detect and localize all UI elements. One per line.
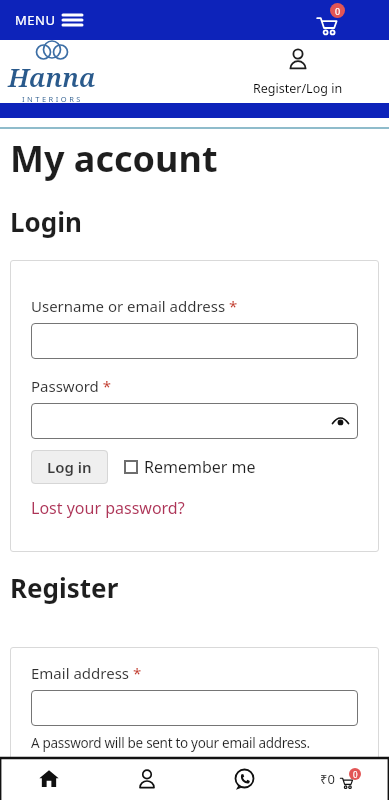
staticText: 0 <box>335 5 341 17</box>
button[interactable]: Hanna <box>0 40 96 103</box>
button[interactable] <box>98 757 195 800</box>
staticText: 0 <box>353 769 358 780</box>
staticText: ₹0 <box>320 770 335 788</box>
staticText: Log in <box>47 457 92 477</box>
button[interactable]: Remember me <box>124 456 256 478</box>
staticText: Username or email address * <box>31 296 238 316</box>
staticText: Register/Log in <box>253 80 343 97</box>
button[interactable]: 0 <box>315 3 389 37</box>
button[interactable]: Register/Log in <box>253 46 349 97</box>
staticText: Remember me <box>144 456 256 478</box>
staticText: Email address * <box>31 663 142 683</box>
staticText: My account <box>10 134 218 183</box>
staticText: MENU <box>15 11 56 29</box>
button[interactable] <box>31 403 358 439</box>
button[interactable] <box>31 690 358 726</box>
button[interactable]: Log in <box>31 450 108 484</box>
button[interactable]: Lost your password? <box>31 497 185 519</box>
staticText: Login <box>10 204 82 239</box>
button[interactable]: ₹0 <box>292 757 389 800</box>
button[interactable] <box>31 323 358 359</box>
staticText: INTERIORS <box>22 94 83 103</box>
staticText: Password * <box>31 376 112 396</box>
staticText: Register <box>10 570 119 605</box>
staticText: A password will be sent to your email ad… <box>31 734 310 752</box>
button[interactable] <box>195 757 292 800</box>
button[interactable]: MENU <box>0 11 82 29</box>
button[interactable] <box>0 757 98 800</box>
staticText: Hanna <box>8 59 96 94</box>
